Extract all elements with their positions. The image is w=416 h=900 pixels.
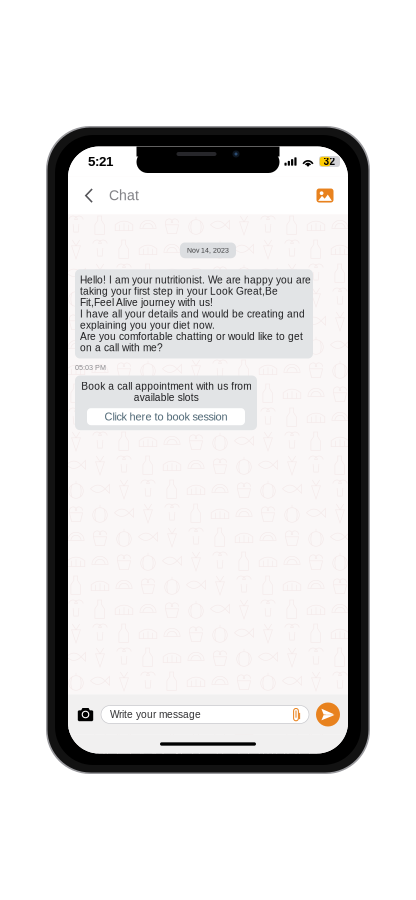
staticText: Hello! I am your nutritionist. We are ha…: [80, 274, 311, 308]
staticText: Nov 14, 2023: [187, 246, 229, 254]
button[interactable]: Camera: [77, 707, 94, 722]
button[interactable]: Send: [316, 702, 340, 726]
staticText: Write your message: [110, 709, 201, 720]
staticText: Are you comfortable chatting or would li…: [80, 331, 303, 353]
staticText: 5:21: [88, 154, 113, 169]
button[interactable]: Back: [77, 180, 101, 210]
staticText: Click here to book session: [104, 411, 227, 423]
staticText: Book a call appointment with us from ava…: [81, 380, 251, 403]
button[interactable]: Photos: [314, 182, 336, 208]
staticText: 32: [323, 156, 335, 167]
staticText: Chat: [109, 188, 139, 203]
button[interactable]: Chat: [101, 180, 139, 210]
button[interactable]: Attach file: [292, 707, 301, 721]
staticText: I have all your details and would be cre…: [80, 308, 305, 331]
staticText: 05:03 PM: [75, 363, 106, 371]
button[interactable]: Click here to book session: [87, 408, 245, 425]
